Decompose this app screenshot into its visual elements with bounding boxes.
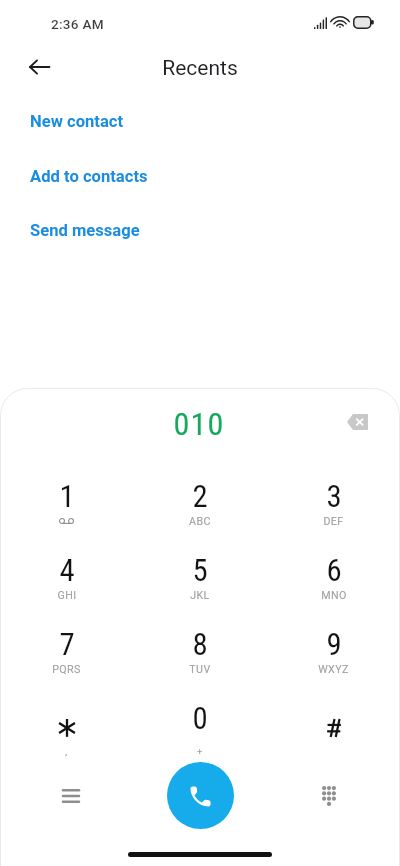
staticText: 9 xyxy=(326,626,342,662)
button[interactable]: 1 xyxy=(0,478,133,530)
staticText: JKL xyxy=(190,589,210,602)
button[interactable]: 6 xyxy=(267,552,400,604)
staticText: ABC xyxy=(189,515,211,528)
staticText: 6 xyxy=(326,552,342,588)
button[interactable]: 9 xyxy=(267,626,400,678)
staticText: Recents xyxy=(0,56,400,81)
button[interactable]: Send message xyxy=(0,207,400,251)
staticText: 0 xyxy=(192,700,208,736)
button[interactable]: Add to contacts xyxy=(0,153,400,197)
button[interactable]: , xyxy=(0,700,133,752)
button[interactable]: 3 xyxy=(267,478,400,530)
button[interactable] xyxy=(267,700,400,752)
staticText: New contact xyxy=(30,112,124,131)
staticText: + xyxy=(197,746,203,757)
staticText: , xyxy=(65,746,68,757)
staticText: MNO xyxy=(321,589,347,602)
button[interactable]: 7 xyxy=(0,626,133,678)
staticText: PQRS xyxy=(52,663,81,676)
staticText: 5 xyxy=(192,552,208,588)
button[interactable]: Backspace xyxy=(337,402,377,442)
staticText: 2 xyxy=(192,478,208,514)
button[interactable]: 0 xyxy=(133,700,266,752)
staticText: 4 xyxy=(59,552,75,588)
staticText: GHI xyxy=(57,589,77,602)
staticText: 010 xyxy=(0,405,399,443)
staticText: DEF xyxy=(323,515,344,528)
staticText: Send message xyxy=(30,221,140,240)
button[interactable]: Call xyxy=(167,762,234,829)
staticText: WXYZ xyxy=(318,663,349,676)
button[interactable]: 4 xyxy=(0,552,133,604)
button[interactable]: Menu xyxy=(49,774,92,817)
staticText: 2:36 AM xyxy=(51,16,104,32)
button[interactable]: Dialpad xyxy=(307,774,350,817)
staticText: 8 xyxy=(192,626,208,662)
button[interactable]: Back xyxy=(18,45,61,88)
button[interactable]: 5 xyxy=(133,552,266,604)
staticText: 3 xyxy=(326,478,342,514)
button[interactable]: 2 xyxy=(133,478,266,530)
staticText: 7 xyxy=(59,626,75,662)
button[interactable]: 8 xyxy=(133,626,266,678)
button[interactable]: New contact xyxy=(0,98,400,142)
staticText: TUV xyxy=(189,663,211,676)
staticText: Add to contacts xyxy=(30,167,148,186)
staticText: 1 xyxy=(59,478,75,514)
